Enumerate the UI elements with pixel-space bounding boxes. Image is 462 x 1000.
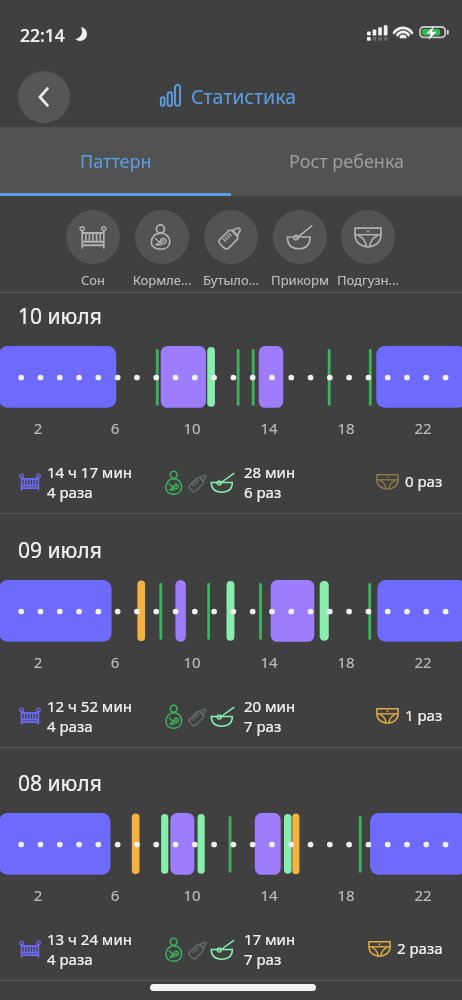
button[interactable]: Кормле... bbox=[126, 210, 198, 289]
button[interactable]: Подгузн... bbox=[332, 210, 404, 289]
staticText: 6 раз bbox=[244, 482, 282, 502]
button[interactable]: Сон bbox=[57, 210, 129, 289]
staticText: Бутыло... bbox=[195, 271, 267, 289]
staticText: 6 bbox=[95, 418, 135, 438]
staticText: Кормле... bbox=[126, 271, 198, 289]
staticText: 28 мин bbox=[244, 462, 296, 482]
staticText: 09 июля bbox=[18, 536, 102, 565]
staticText: Подгузн... bbox=[332, 271, 404, 289]
staticText: 22:14 bbox=[20, 23, 65, 47]
staticText: 14 bbox=[249, 885, 289, 905]
staticText: Паттерн bbox=[80, 149, 152, 174]
staticText: 14 bbox=[249, 418, 289, 438]
staticText: Рост ребенка bbox=[289, 149, 405, 174]
staticText: 17 мин bbox=[244, 929, 296, 949]
staticText: 0 раз bbox=[405, 471, 443, 491]
staticText: 4 раза bbox=[47, 949, 93, 969]
button[interactable]: Назад bbox=[18, 71, 70, 123]
staticText: 2 bbox=[18, 652, 58, 672]
staticText: 10 bbox=[172, 885, 212, 905]
staticText: 7 раз bbox=[244, 716, 282, 736]
staticText: Сон bbox=[57, 271, 129, 289]
staticText: 6 bbox=[95, 652, 135, 672]
staticText: 1 раз bbox=[405, 705, 443, 725]
staticText: 2 раза bbox=[397, 938, 443, 958]
staticText: 12 ч 52 мин bbox=[47, 696, 132, 716]
staticText: 10 bbox=[172, 418, 212, 438]
staticText: 20 мин bbox=[244, 696, 296, 716]
staticText: 6 bbox=[95, 885, 135, 905]
staticText: 10 bbox=[172, 652, 212, 672]
staticText: 22 bbox=[403, 418, 443, 438]
staticText: 14 bbox=[249, 652, 289, 672]
staticText: 4 раза bbox=[47, 482, 93, 502]
staticText: 10 июля bbox=[18, 302, 102, 331]
button[interactable]: Рост ребенка bbox=[231, 127, 462, 196]
staticText: 14 ч 17 мин bbox=[47, 462, 132, 482]
staticText: 22 bbox=[403, 885, 443, 905]
button[interactable]: Бутыло... bbox=[195, 210, 267, 289]
staticText: Прикорм bbox=[264, 271, 336, 289]
staticText: 22 bbox=[403, 652, 443, 672]
staticText: 18 bbox=[326, 418, 366, 438]
staticText: 7 раз bbox=[244, 949, 282, 969]
staticText: 2 bbox=[18, 885, 58, 905]
staticText: 4 раза bbox=[47, 716, 93, 736]
staticText: 18 bbox=[326, 652, 366, 672]
button[interactable]: Прикорм bbox=[264, 210, 336, 289]
staticText: 2 bbox=[18, 418, 58, 438]
staticText: Статистика bbox=[191, 83, 296, 110]
staticText: 18 bbox=[326, 885, 366, 905]
staticText: 08 июля bbox=[18, 769, 102, 798]
button[interactable]: Паттерн bbox=[0, 127, 231, 196]
staticText: 13 ч 24 мин bbox=[47, 929, 132, 949]
